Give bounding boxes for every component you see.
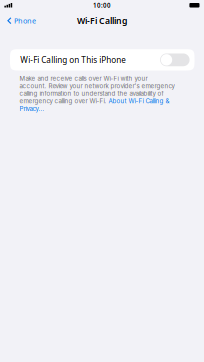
staticText: Wi-Fi Calling on This iPhone bbox=[20, 54, 126, 65]
button[interactable]: Phone bbox=[0, 13, 40, 28]
staticText: 10:00 bbox=[93, 1, 111, 9]
staticText: Make and receive calls over Wi-Fi with y… bbox=[19, 75, 174, 112]
button[interactable]: Wi-Fi Calling on This iPhone bbox=[10, 49, 194, 70]
staticText: Phone bbox=[14, 16, 36, 25]
staticText: Wi-Fi Calling bbox=[77, 15, 127, 26]
